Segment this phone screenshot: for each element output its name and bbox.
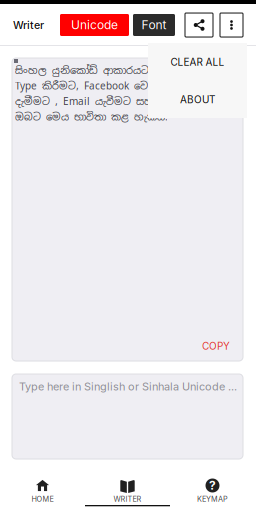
staticText: Writer bbox=[13, 18, 44, 31]
staticText: KEYMAP bbox=[197, 495, 228, 503]
button[interactable]: Font bbox=[133, 14, 175, 36]
button[interactable]: ? bbox=[170, 463, 255, 512]
button[interactable]: Writer bbox=[13, 17, 49, 33]
staticText: WRITER bbox=[113, 495, 141, 503]
button[interactable]: CLEAR ALL bbox=[148, 43, 247, 81]
staticText: ABOUT bbox=[180, 93, 215, 106]
staticText: ඔබට මෙය භාවිතා කළ හැකය. bbox=[15, 110, 168, 123]
button[interactable]: Share bbox=[185, 13, 213, 37]
staticText: Type කිරීමට, Facebook වෙත ලිපි යැවීමට bbox=[15, 79, 220, 92]
staticText: ? bbox=[209, 478, 216, 493]
button[interactable]: COPY bbox=[199, 339, 233, 353]
staticText: සිංහල යුනිකෝඩ් ආකාරයට ඉක්මනින් Type bbox=[15, 64, 228, 77]
staticText: HOME bbox=[31, 495, 53, 503]
staticText: COPY bbox=[202, 340, 230, 352]
staticText: දැමීමට , Email යැවීමට සහ තවත් දේවල් bbox=[15, 95, 219, 108]
button[interactable]: HOME bbox=[0, 463, 85, 512]
button[interactable]: WRITER bbox=[85, 463, 170, 512]
button[interactable]: Unicode bbox=[60, 14, 129, 36]
staticText: Unicode bbox=[71, 18, 118, 32]
staticText: Font bbox=[141, 18, 166, 32]
button[interactable]: ABOUT bbox=[148, 81, 247, 118]
staticText: CLEAR ALL bbox=[170, 56, 224, 68]
button[interactable]: More options bbox=[220, 13, 243, 37]
staticText: Type here in Singlish or Sinhala Unicode… bbox=[19, 380, 237, 393]
